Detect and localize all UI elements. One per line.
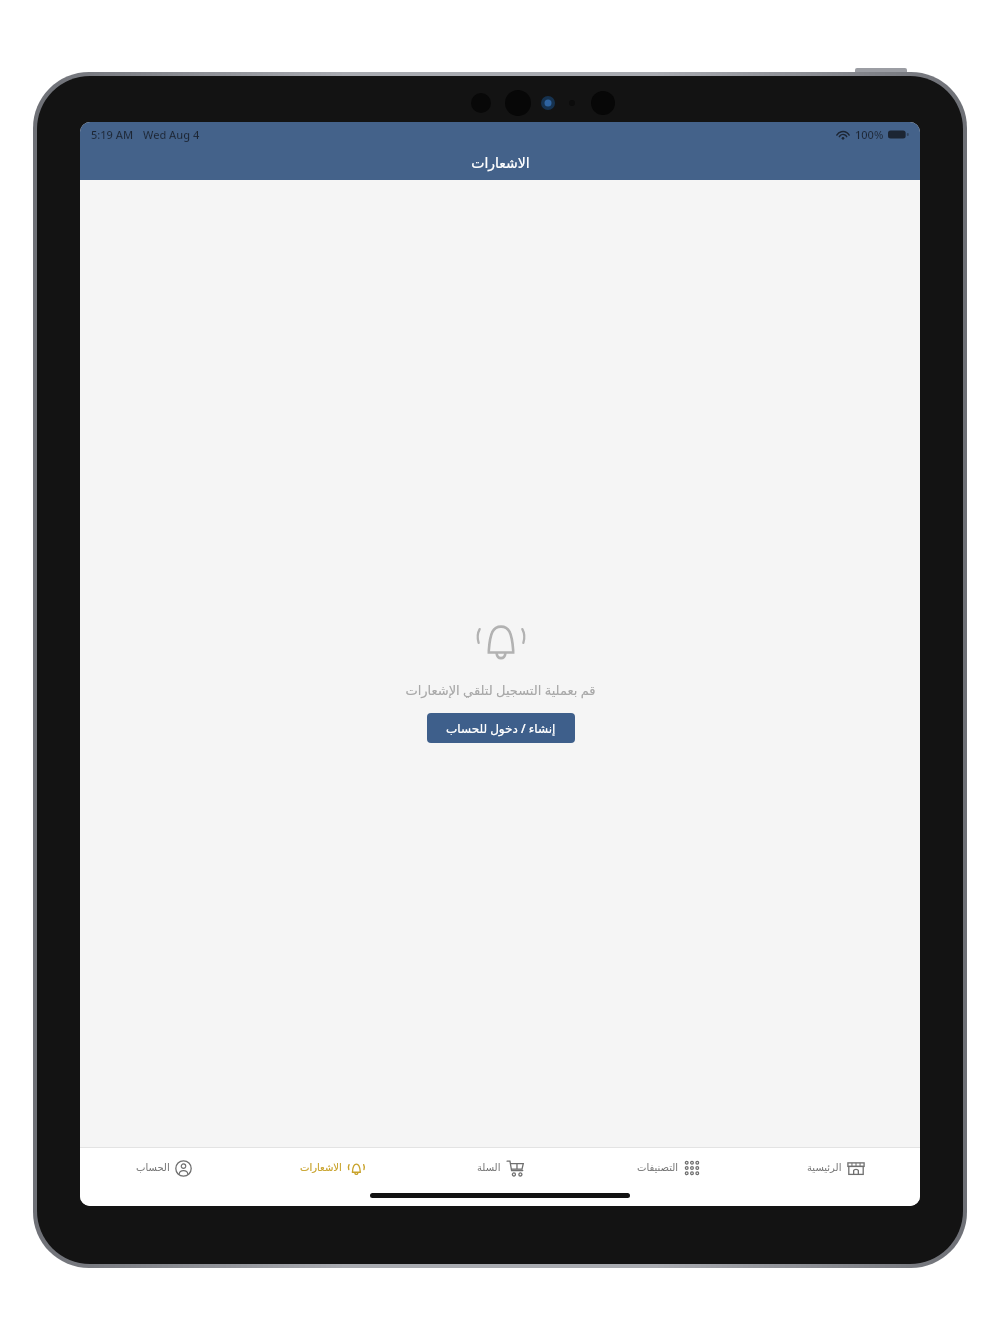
button[interactable]: إنشاء / دخول للحساب [427,713,575,743]
staticText: 5:19 AM [91,127,134,142]
button[interactable]: الاشعارات [248,1148,416,1188]
button[interactable]: الرئيسية [752,1148,920,1188]
staticText: الاشعارات [300,1162,342,1174]
staticText: التصنيفات [637,1162,679,1174]
staticText: إنشاء / دخول للحساب [446,720,556,736]
button[interactable]: التصنيفات [584,1148,752,1188]
button[interactable]: الحساب [80,1148,248,1188]
staticText: قم بعملية التسجيل لتلقي الإشعارات [405,681,596,699]
staticText: الاشعارات [471,155,530,171]
staticText: 100% [855,127,884,142]
staticText: Wed Aug 4 [143,127,200,142]
button[interactable]: السلة [416,1148,584,1188]
staticText: الرئيسية [807,1162,842,1174]
staticText: الحساب [136,1162,170,1174]
staticText: السلة [477,1162,501,1174]
